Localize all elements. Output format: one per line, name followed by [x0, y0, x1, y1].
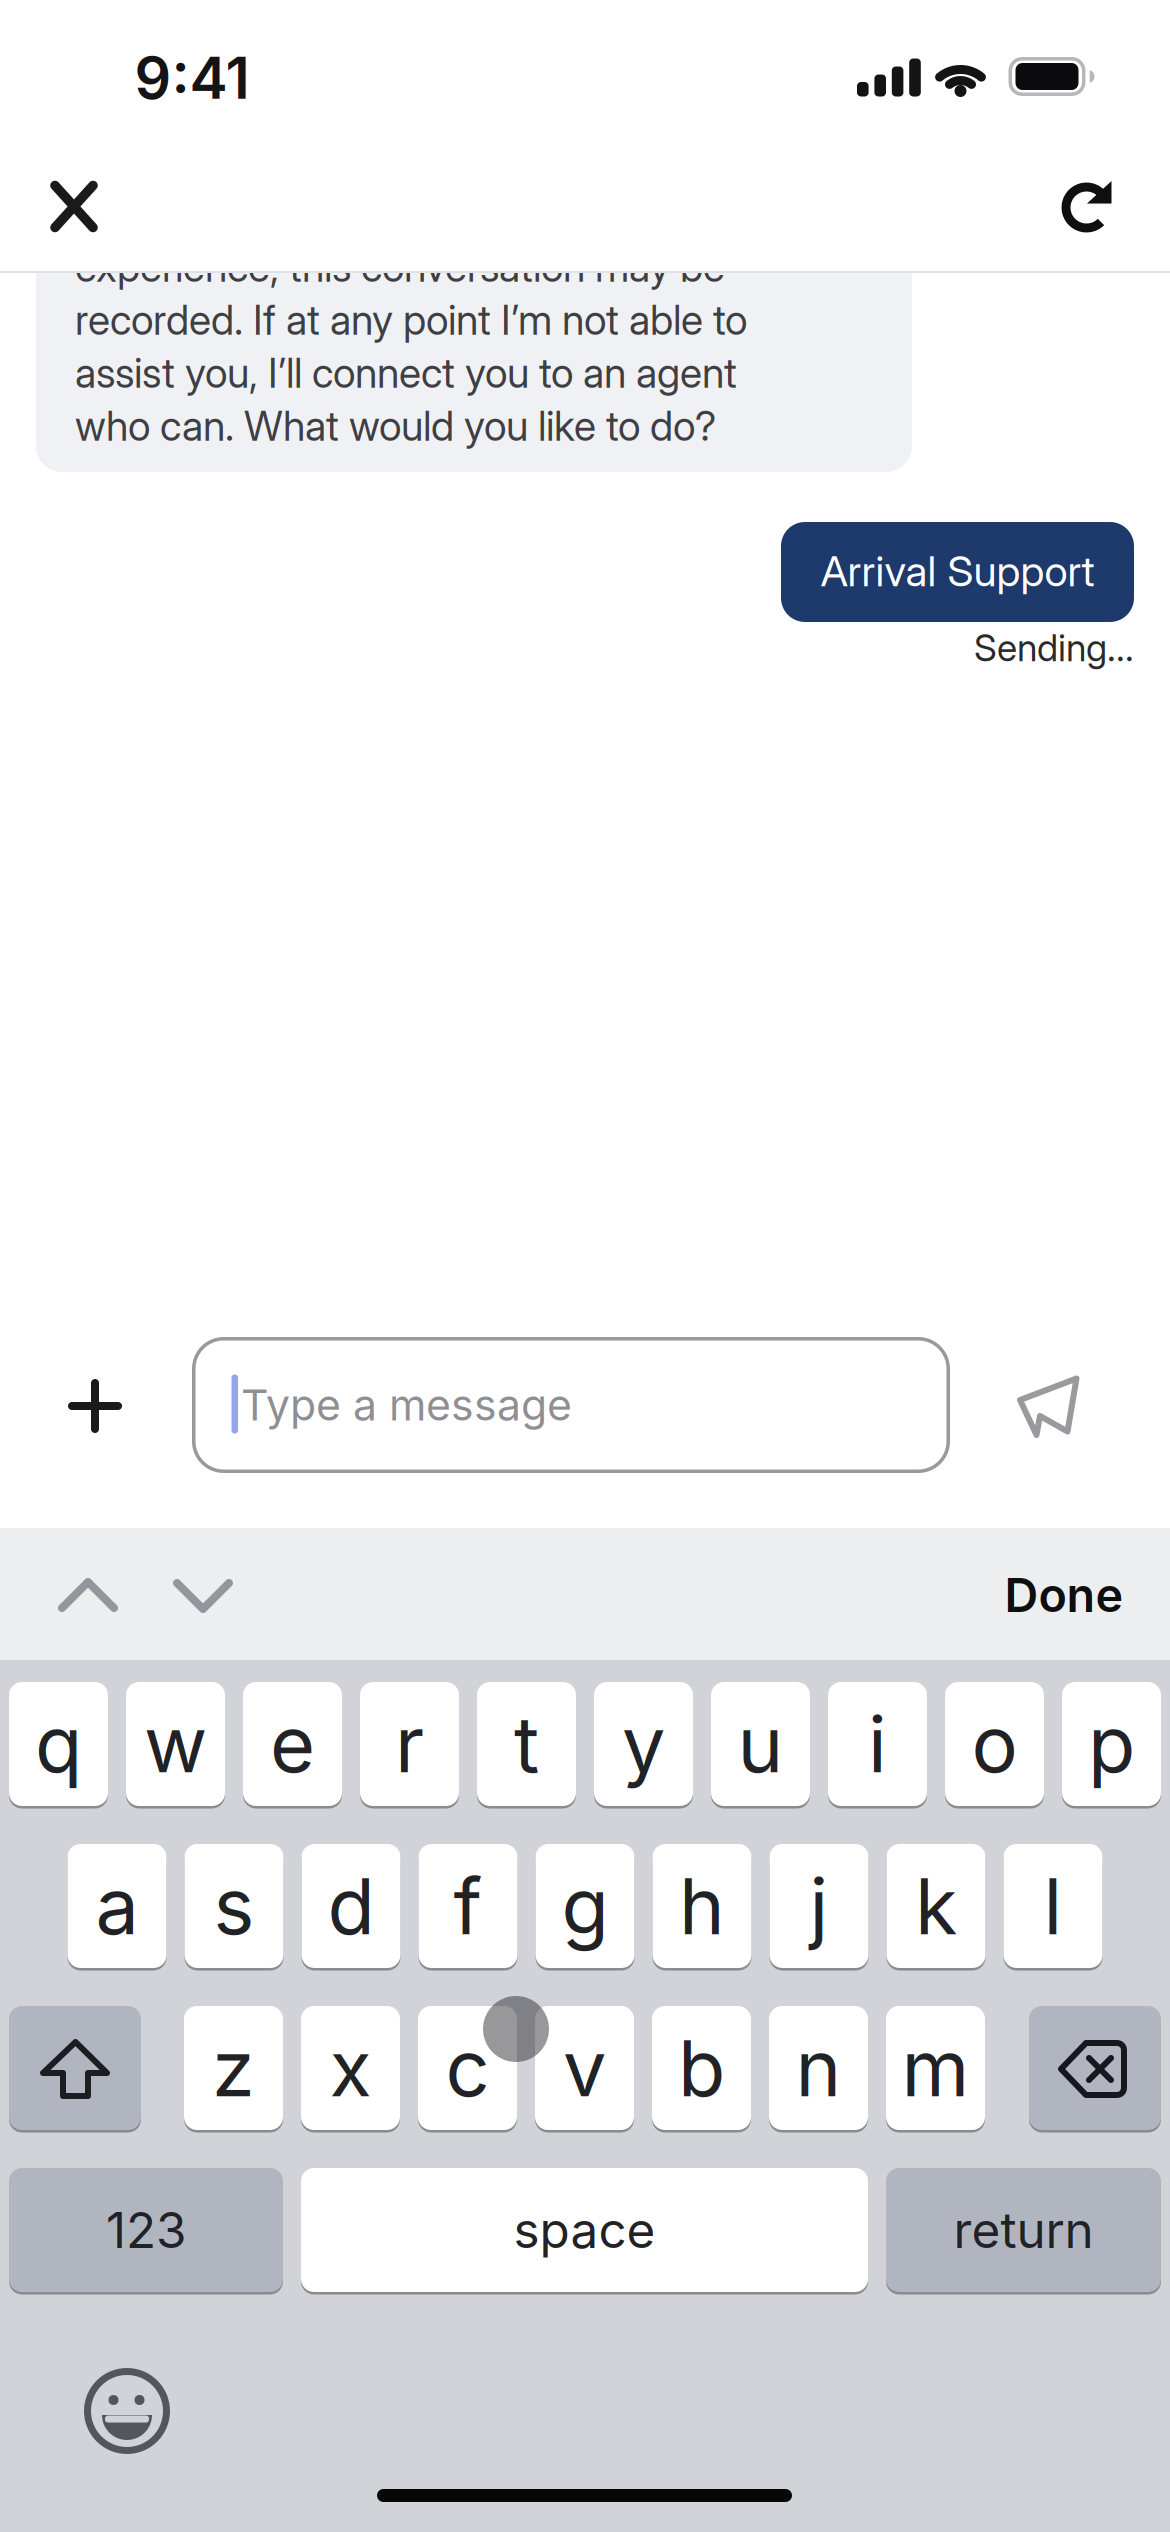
staticText: space	[513, 2200, 655, 2260]
button[interactable]: Refresh	[1042, 158, 1130, 246]
button[interactable]: l	[1003, 1844, 1102, 1968]
staticText: who can. What would you like to do?	[75, 401, 716, 451]
button[interactable]: r	[360, 1682, 459, 1806]
staticText: q	[35, 1697, 82, 1791]
staticText: 123	[106, 2200, 186, 2260]
button[interactable]: s	[184, 1844, 283, 1968]
button[interactable]: Type a message	[192, 1337, 950, 1473]
button[interactable]: e	[243, 1682, 342, 1806]
staticText: d	[327, 1859, 374, 1953]
button[interactable]: t	[477, 1682, 576, 1806]
button[interactable]: m	[886, 2006, 985, 2130]
button[interactable]: w	[126, 1682, 225, 1806]
button[interactable]: k	[886, 1844, 985, 1968]
button[interactable]: 123	[9, 2168, 283, 2292]
staticText: s	[213, 1859, 254, 1953]
button[interactable]: f	[418, 1844, 517, 1968]
button[interactable]: n	[769, 2006, 868, 2130]
button[interactable]: d	[301, 1844, 400, 1968]
button[interactable]: o	[945, 1682, 1044, 1806]
staticText: i	[868, 1697, 887, 1791]
staticText: assist you, I’ll connect you to an agent	[75, 348, 737, 398]
staticText: m	[901, 2021, 969, 2115]
staticText: Done	[1004, 1567, 1123, 1623]
staticText: 9:41	[134, 43, 249, 113]
button[interactable]: Previous field	[43, 1550, 133, 1640]
staticText: experience, this conversation may be	[75, 242, 725, 292]
button[interactable]: v	[535, 2006, 634, 2130]
staticText: v	[563, 2021, 606, 2115]
staticText: x	[329, 2021, 371, 2115]
button[interactable]: Done	[984, 1550, 1144, 1640]
staticText: h	[679, 1859, 725, 1953]
button[interactable]: z	[184, 2006, 283, 2130]
button[interactable]: c	[418, 2006, 517, 2130]
staticText: c	[445, 2021, 489, 2115]
button[interactable]: x	[301, 2006, 400, 2130]
staticText: n	[795, 2021, 841, 2115]
button[interactable]: h	[652, 1844, 751, 1968]
staticText: y	[622, 1697, 665, 1791]
button[interactable]: j	[769, 1844, 868, 1968]
staticText: r	[395, 1697, 424, 1791]
staticText: a	[95, 1859, 138, 1953]
staticText: p	[1088, 1697, 1135, 1791]
staticText: j	[809, 1859, 828, 1953]
staticText: w	[144, 1697, 207, 1791]
staticText: Type a message	[241, 1379, 572, 1431]
staticText: l	[1043, 1859, 1062, 1953]
staticText: f	[453, 1859, 482, 1953]
staticText: b	[678, 2021, 725, 2115]
button[interactable]: g	[535, 1844, 634, 1968]
button[interactable]: u	[711, 1682, 810, 1806]
button[interactable]: Delete	[1029, 2006, 1161, 2130]
button[interactable]: Next field	[158, 1551, 248, 1641]
staticText: Arrival Support	[820, 546, 1094, 596]
button[interactable]: return	[886, 2168, 1161, 2292]
staticText: z	[212, 2021, 255, 2115]
button[interactable]: Close	[32, 162, 116, 250]
staticText: k	[915, 1859, 957, 1953]
staticText: return	[953, 2200, 1093, 2260]
staticText: g	[561, 1859, 608, 1953]
button[interactable]: i	[828, 1682, 927, 1806]
button[interactable]: q	[9, 1682, 108, 1806]
staticText: Sending...	[974, 626, 1134, 670]
button[interactable]: y	[594, 1682, 693, 1806]
button[interactable]: p	[1062, 1682, 1161, 1806]
staticText: o	[971, 1697, 1017, 1791]
button[interactable]: space	[301, 2168, 868, 2292]
button[interactable]: Send	[1006, 1364, 1092, 1450]
button[interactable]: b	[652, 2006, 751, 2130]
button[interactable]: Emoji	[72, 2356, 182, 2466]
button[interactable]: a	[67, 1844, 166, 1968]
button[interactable]: Add attachment	[50, 1361, 140, 1451]
staticText: u	[737, 1697, 783, 1791]
staticText: t	[514, 1697, 539, 1791]
button[interactable]: Shift	[9, 2006, 141, 2130]
staticText: recorded. If at any point I’m not able t…	[75, 295, 747, 345]
staticText: e	[270, 1697, 315, 1791]
